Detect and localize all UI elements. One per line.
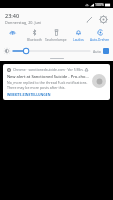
staticText: Lautlos [73, 38, 84, 42]
button[interactable]: Bluetooth [23, 28, 45, 43]
staticText: Bluetooth [27, 38, 42, 42]
button[interactable]: Einstellungen [97, 13, 109, 25]
staticText: 23:40 [5, 12, 20, 19]
staticText: New alert at Sanctioned Suicide - Pro-ch… [7, 74, 89, 79]
staticText: Donnerstag, 20. Juni [5, 20, 42, 25]
staticText: WEBSITE-EINSTELLUNGEN [7, 92, 51, 97]
staticText: Chrome · sanctionedsuicide.com · Vor 5 M… [13, 67, 84, 72]
staticText: Taschenlampe [45, 38, 67, 42]
staticText: No_more replied to the thread Fuck notif… [7, 80, 89, 90]
button[interactable]: WEBSITE-EINSTELLUNGEN [7, 92, 51, 97]
button[interactable]: Auto-Helligkeit [103, 48, 109, 54]
button[interactable]: Helligkeit [13, 47, 90, 55]
staticText: 100% [95, 2, 104, 7]
staticText: Auto [93, 49, 101, 54]
button[interactable]: Lautlos [67, 28, 89, 43]
button[interactable]: Auto-Drehen [89, 28, 111, 43]
button[interactable]: Chrome · sanctionedsuicide.com · Vor 5 M… [3, 64, 110, 100]
button[interactable]: Bearbeiten [83, 13, 95, 25]
button[interactable]: Taschenlampe [45, 28, 67, 43]
button[interactable] [2, 28, 23, 43]
staticText: Auto-Drehen [90, 38, 110, 42]
